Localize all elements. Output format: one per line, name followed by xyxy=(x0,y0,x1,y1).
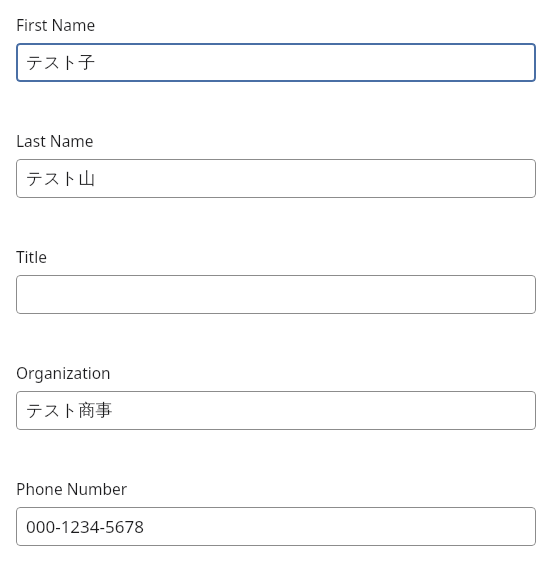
button[interactable]: Title xyxy=(16,275,536,314)
staticText: テスト子 xyxy=(26,52,96,73)
staticText: Organization xyxy=(16,362,111,383)
staticText: テスト山 xyxy=(26,168,96,189)
button[interactable]: Organization xyxy=(16,391,536,430)
staticText: テスト商事 xyxy=(26,400,113,421)
button[interactable]: Last Name xyxy=(16,159,536,198)
staticText: First Name xyxy=(16,14,96,35)
staticText: Title xyxy=(16,246,47,267)
button[interactable]: First Name xyxy=(16,43,536,82)
button[interactable]: Phone Number xyxy=(16,507,536,546)
staticText: Last Name xyxy=(16,130,94,151)
staticText: Phone Number xyxy=(16,478,128,499)
staticText: 000-1234-5678 xyxy=(26,515,144,538)
